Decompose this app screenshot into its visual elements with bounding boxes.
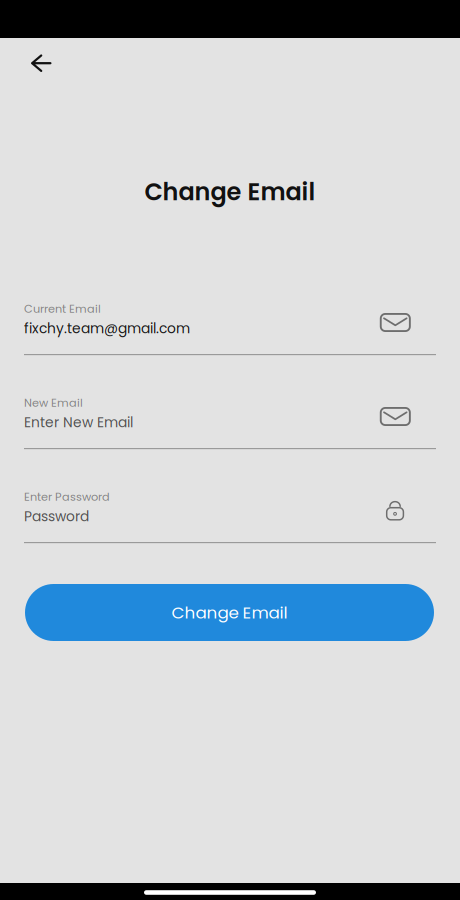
button[interactable]: Back <box>17 41 65 85</box>
staticText: Current Email <box>24 301 101 317</box>
button[interactable]: New Email <box>24 395 436 449</box>
staticText: Password <box>24 507 89 526</box>
button[interactable]: Enter Password <box>24 489 436 543</box>
staticText: Enter Password <box>24 489 110 505</box>
staticText: Enter New Email <box>24 413 133 432</box>
staticText: New Email <box>24 395 83 411</box>
staticText: fixchy.team@gmail.com <box>24 319 190 338</box>
button[interactable]: Change Email <box>25 584 434 641</box>
staticText: Change Email <box>171 601 287 624</box>
staticText: Change Email <box>144 175 315 209</box>
button[interactable]: Current Email <box>24 301 436 355</box>
